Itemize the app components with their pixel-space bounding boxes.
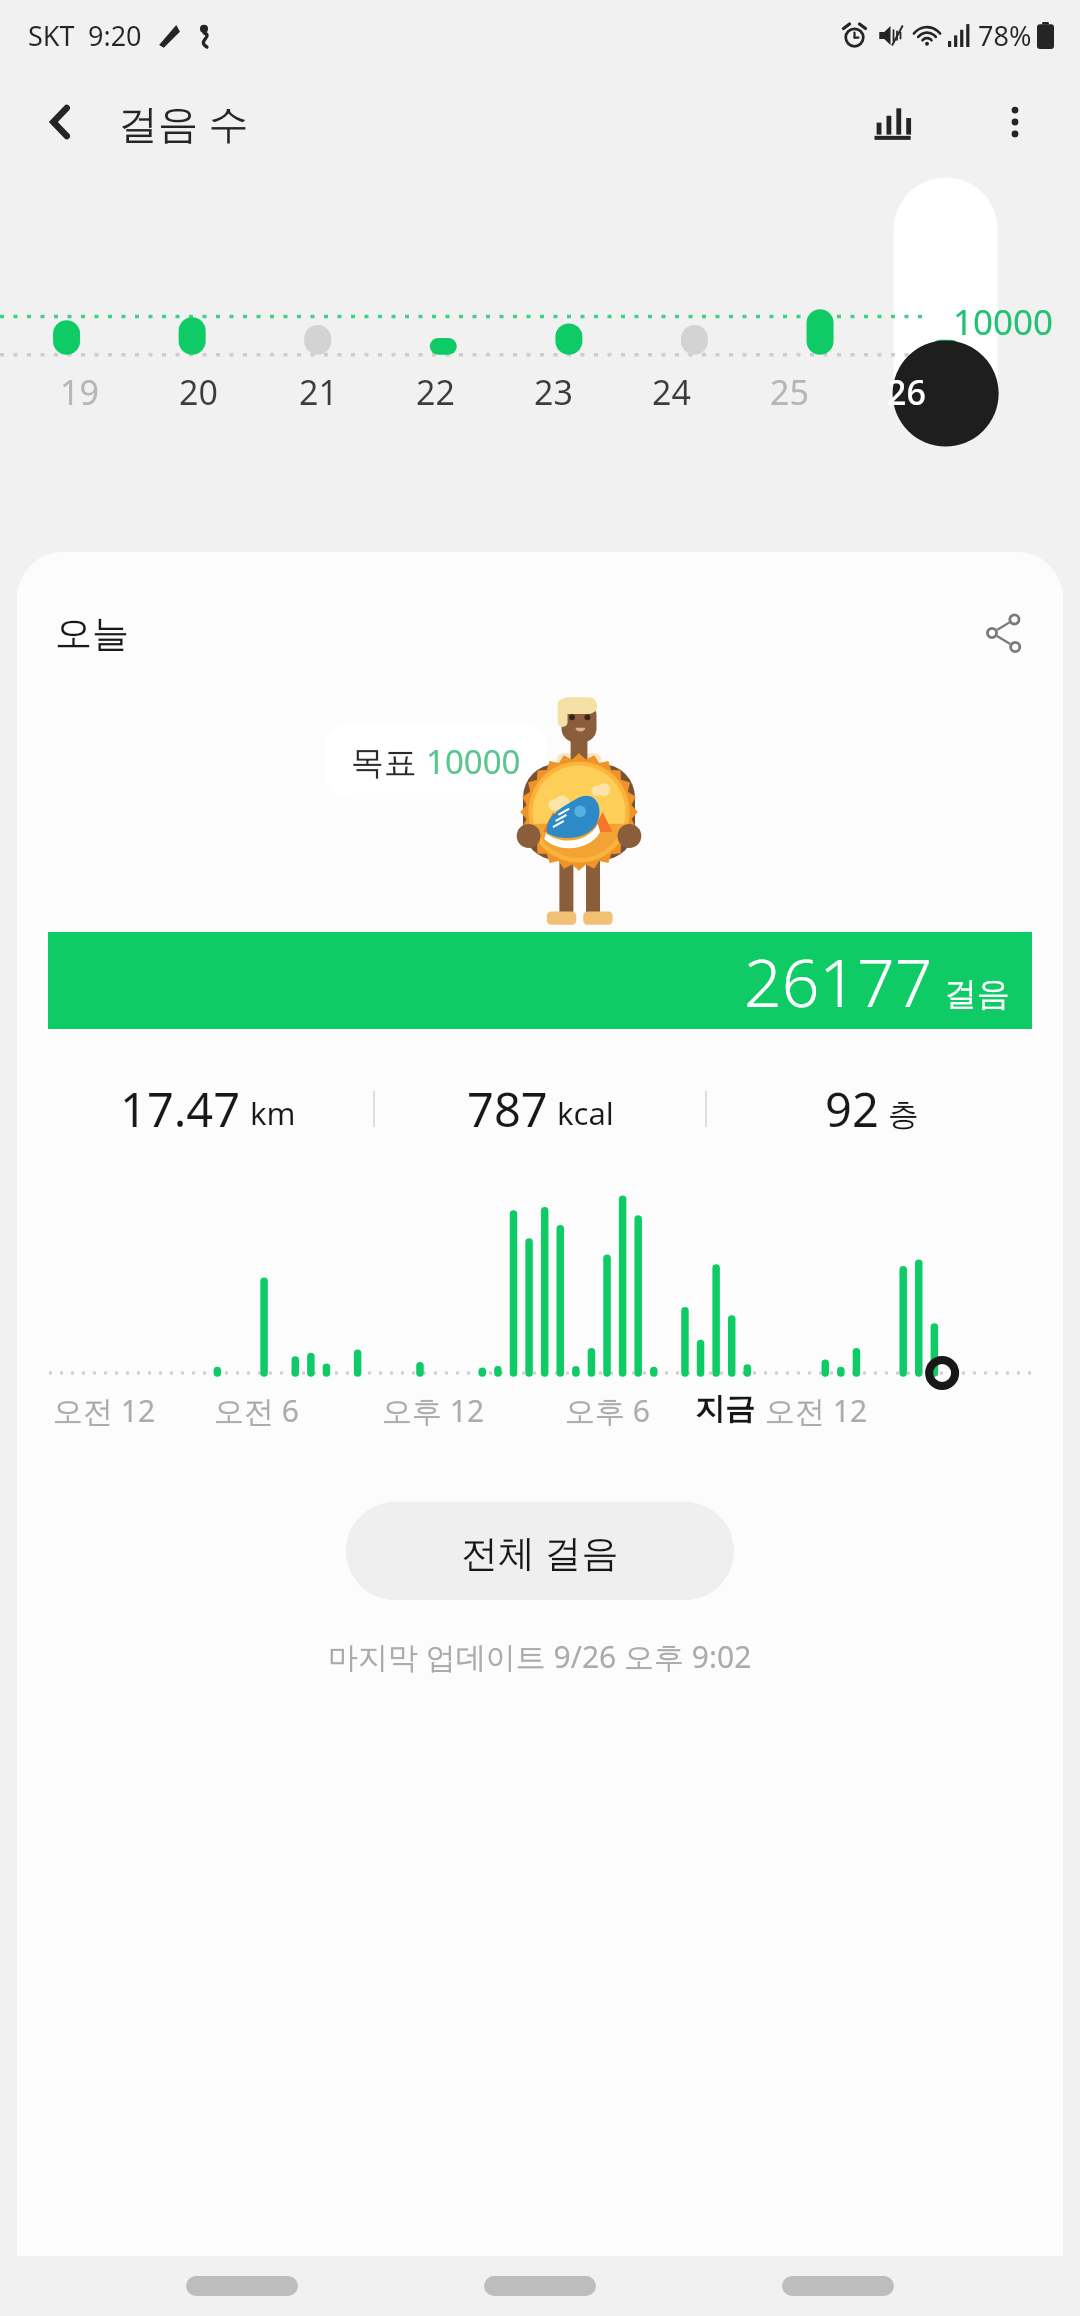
staticText: 787 xyxy=(467,1077,548,1141)
staticText: 마지막 업데이트 9/26 오후 9:02 xyxy=(328,1636,752,1677)
button[interactable]: More options xyxy=(976,83,1054,161)
staticText: 9:20 xyxy=(88,17,142,54)
staticText: 오후 6 xyxy=(565,1390,650,1431)
staticText: 층 xyxy=(888,1095,919,1134)
staticText: 10000 xyxy=(953,298,1054,346)
button[interactable]: 92 xyxy=(707,1077,1037,1141)
button[interactable]: Back xyxy=(24,85,98,159)
staticText: 22 xyxy=(416,369,455,415)
staticText: 26177 xyxy=(744,936,933,1026)
staticText: 오전 12 xyxy=(53,1390,156,1431)
staticText: 오전 12 xyxy=(765,1390,868,1431)
staticText: 78% xyxy=(978,17,1032,54)
staticText: 17.47 xyxy=(120,1077,241,1141)
button[interactable]: 전체 걸음 xyxy=(346,1502,734,1600)
button[interactable]: Home xyxy=(484,2276,596,2296)
button[interactable]: Share xyxy=(967,596,1041,670)
staticText: km xyxy=(250,1092,296,1134)
staticText: 오늘 xyxy=(55,610,129,657)
staticText: 오전 6 xyxy=(214,1390,299,1431)
button[interactable]: 17.47 xyxy=(43,1077,373,1141)
staticText: 걸음 xyxy=(944,973,1010,1015)
staticText: 지금 xyxy=(695,1390,755,1428)
button[interactable]: Recents xyxy=(186,2276,298,2296)
staticText: 19 xyxy=(60,369,99,415)
staticText: SKT xyxy=(28,17,75,54)
button[interactable]: Back xyxy=(782,2276,894,2296)
staticText: 목표 xyxy=(351,739,426,784)
button[interactable]: 26177 xyxy=(48,932,1032,1029)
staticText: 20 xyxy=(179,369,218,415)
staticText: 26 xyxy=(887,369,926,415)
staticText: 전체 걸음 xyxy=(461,1526,619,1577)
staticText: 걸음 수 xyxy=(118,95,249,150)
staticText: 10000 xyxy=(426,739,521,784)
staticText: 92 xyxy=(825,1077,879,1141)
button[interactable]: 목표 xyxy=(351,739,521,784)
staticText: 24 xyxy=(652,369,691,415)
button[interactable]: Chart view xyxy=(854,83,932,161)
staticText: 21 xyxy=(299,369,338,415)
staticText: 23 xyxy=(534,369,573,415)
staticText: kcal xyxy=(557,1092,614,1134)
button[interactable]: 787 xyxy=(375,1077,705,1141)
staticText: 오후 12 xyxy=(382,1390,485,1431)
staticText: 25 xyxy=(770,369,809,415)
